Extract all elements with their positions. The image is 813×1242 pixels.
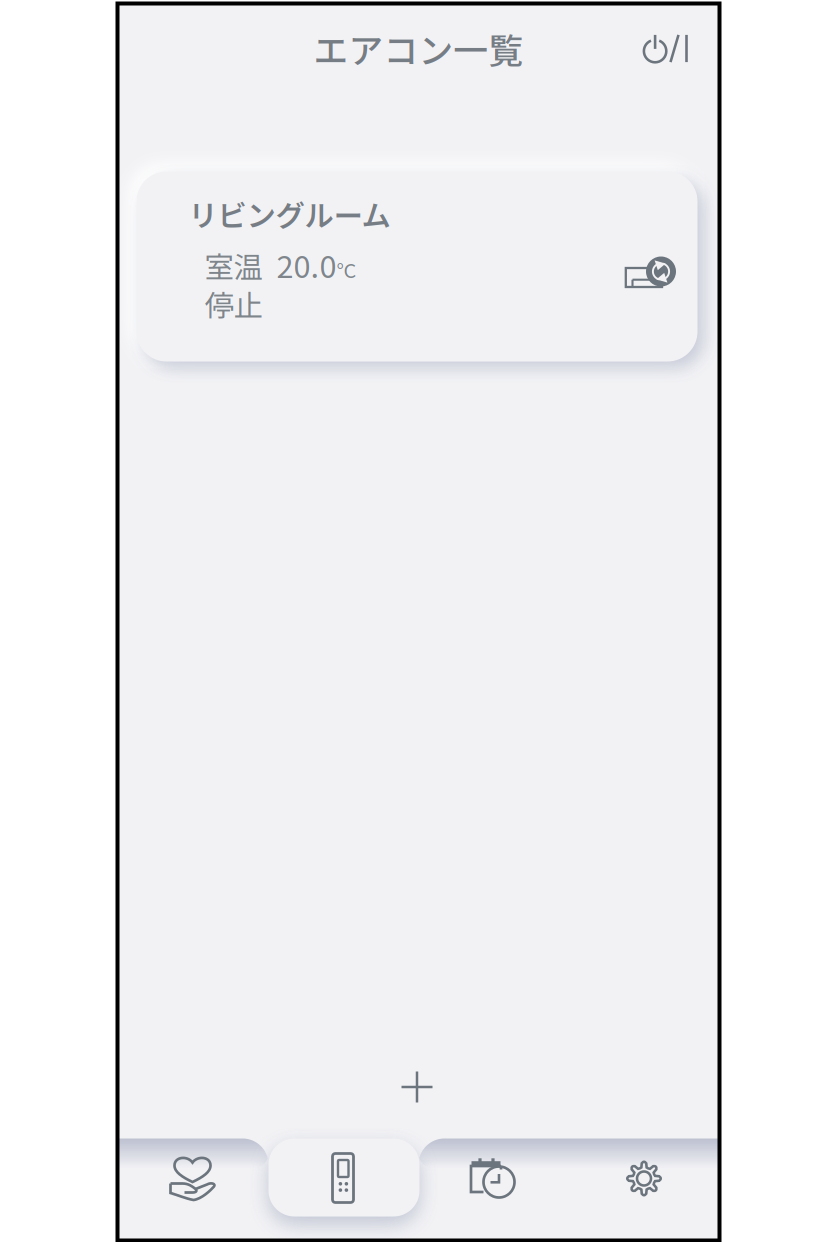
staticText: 停止 (204, 282, 262, 325)
button[interactable]: 電源 (624, 11, 708, 85)
staticText: 20.0 (262, 242, 336, 287)
button[interactable]: お気に入り (117, 1138, 267, 1218)
button[interactable]: エアコンを追加 (382, 1052, 452, 1122)
button[interactable]: リビングルーム (136, 171, 697, 361)
staticText: 室温 (204, 244, 262, 286)
button[interactable]: 設定 (568, 1138, 719, 1218)
staticText: リビングルーム (188, 192, 390, 235)
staticText: °C (336, 255, 356, 284)
staticText: エアコン一覧 (313, 23, 523, 74)
button[interactable]: スケジュール (418, 1138, 568, 1218)
button[interactable]: リモコン (267, 1138, 418, 1218)
